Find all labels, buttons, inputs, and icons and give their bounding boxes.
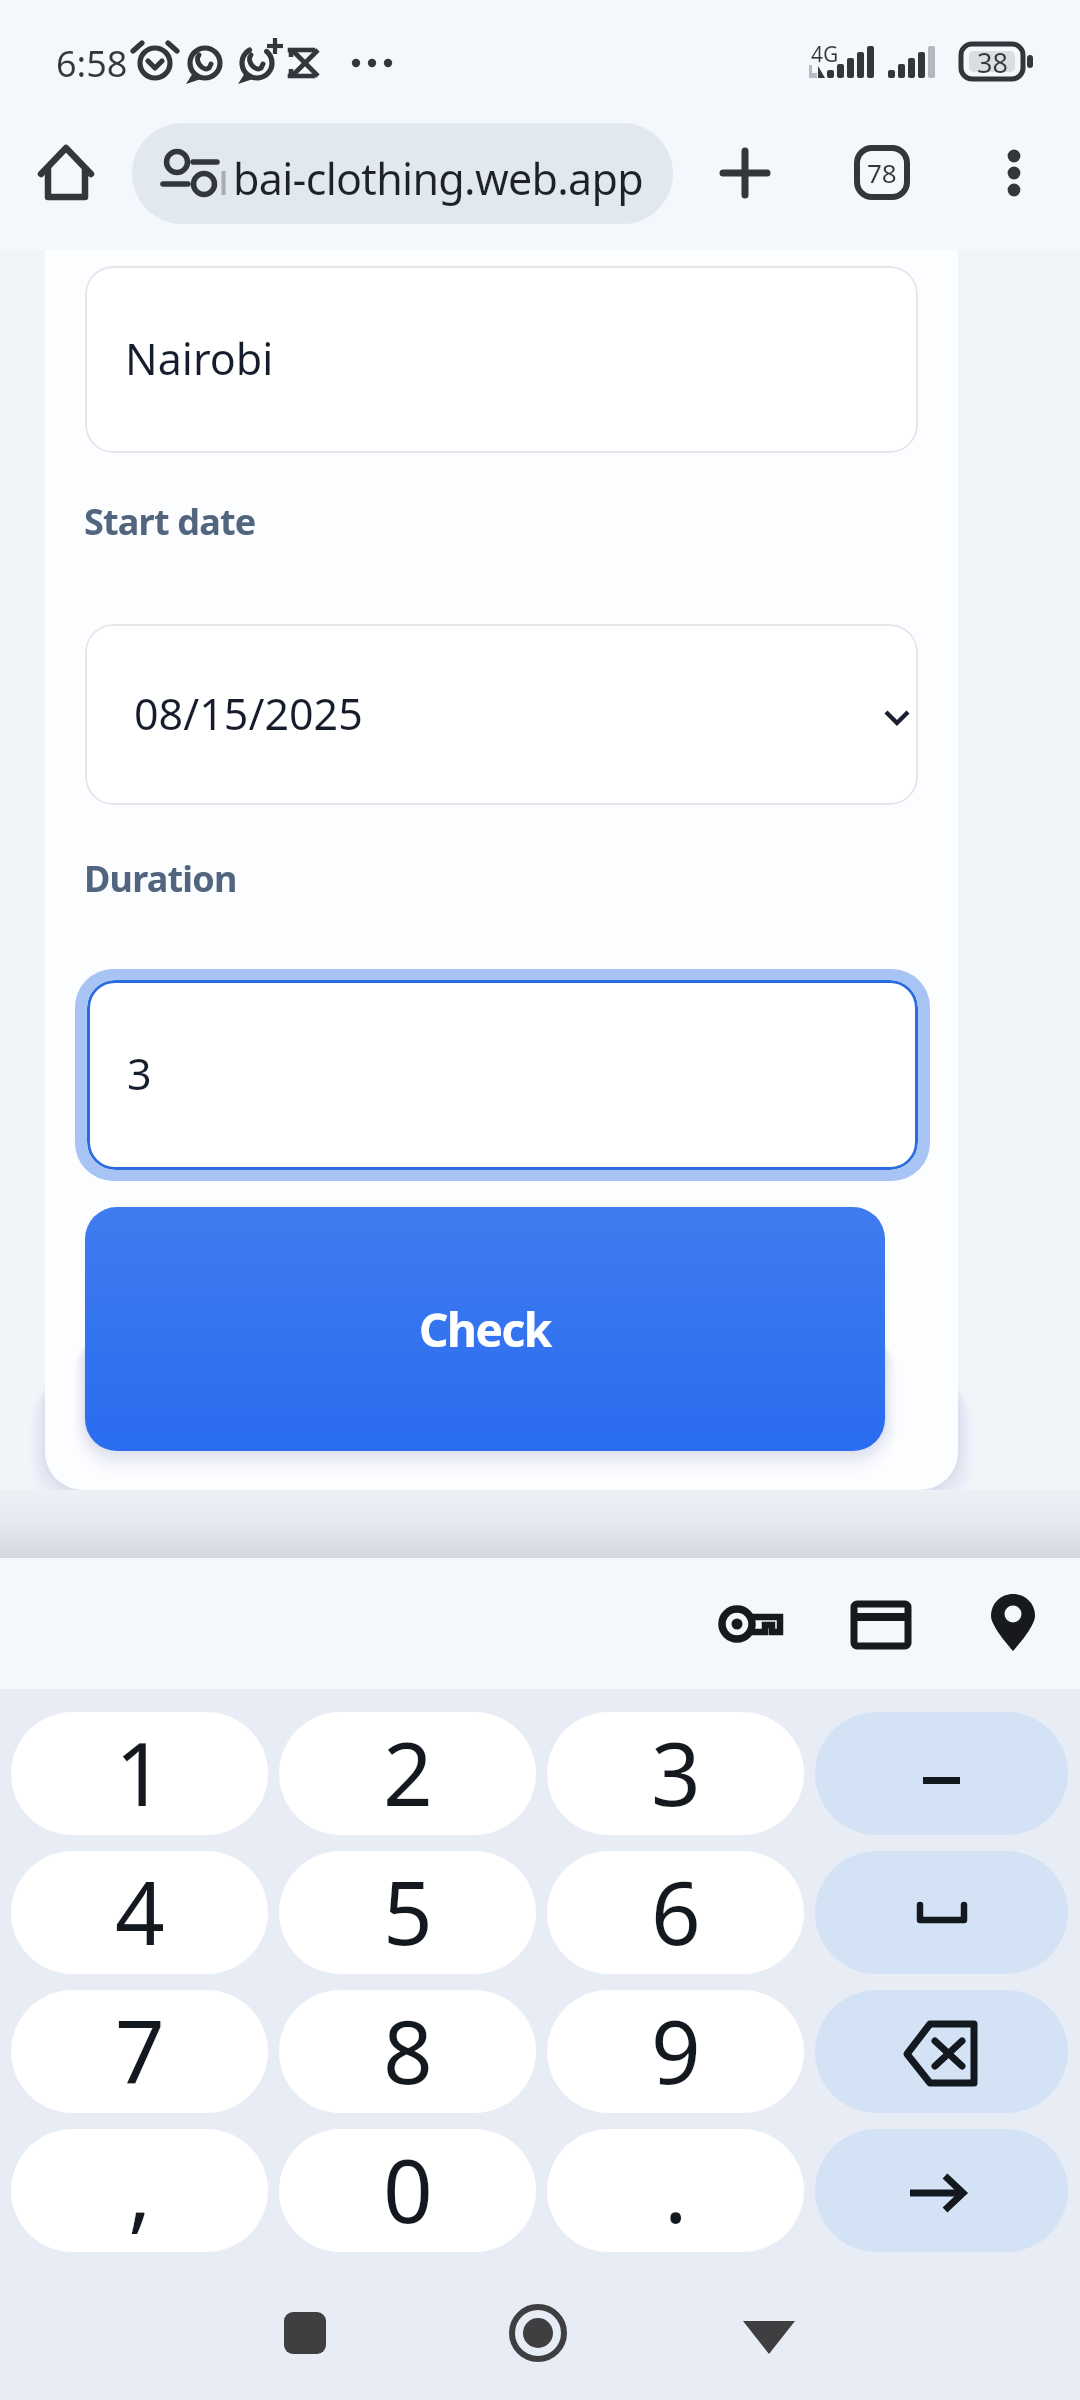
staticText: 3 bbox=[127, 1044, 152, 1103]
staticText: 2 bbox=[383, 1713, 433, 1831]
button[interactable]: Check bbox=[85, 1207, 885, 1451]
button[interactable]: Payment methods bbox=[836, 1579, 926, 1669]
staticText: 78 bbox=[867, 155, 897, 190]
button[interactable]: Passwords bbox=[702, 1579, 792, 1669]
button[interactable]: 08/15/2025 bbox=[85, 624, 918, 805]
staticText: 3 bbox=[651, 1713, 701, 1831]
staticText: . bbox=[664, 2130, 688, 2248]
button[interactable]: More options bbox=[971, 130, 1057, 216]
button[interactable]: 3 bbox=[75, 969, 930, 1181]
button[interactable]: Backspace bbox=[815, 1990, 1068, 2113]
button[interactable]: 9 bbox=[547, 1990, 804, 2113]
staticText: 9 bbox=[651, 1991, 701, 2109]
button[interactable]: 6 bbox=[547, 1851, 804, 1974]
staticText: 8 bbox=[383, 1991, 433, 2109]
button[interactable]: 1 bbox=[11, 1712, 268, 1835]
button[interactable]: Tabs bbox=[839, 130, 925, 216]
staticText: Nairobi bbox=[125, 329, 274, 388]
button[interactable]: 0 bbox=[279, 2129, 536, 2252]
staticText: 6 bbox=[651, 1852, 701, 1970]
staticText: , bbox=[128, 2130, 152, 2248]
button[interactable]: New tab bbox=[702, 130, 788, 216]
staticText: 7 bbox=[115, 1991, 165, 2109]
staticText: 0 bbox=[383, 2130, 433, 2248]
button[interactable]: Space bbox=[815, 1851, 1068, 1974]
staticText: bai-clothing.web.app bbox=[233, 149, 644, 208]
staticText: 5 bbox=[383, 1852, 433, 1970]
staticText: 4G bbox=[811, 40, 839, 69]
button[interactable]: 3 bbox=[547, 1712, 804, 1835]
staticText: 4 bbox=[115, 1852, 165, 1970]
button[interactable]: Enter bbox=[815, 2129, 1068, 2252]
button[interactable]: Back bbox=[739, 2303, 799, 2363]
staticText: 6:58 bbox=[56, 39, 128, 88]
button[interactable]: Minus bbox=[815, 1712, 1068, 1835]
button[interactable]: ı bbox=[132, 123, 673, 224]
staticText: 1 bbox=[115, 1713, 165, 1831]
button[interactable]: Home bbox=[16, 122, 116, 222]
staticText: 08/15/2025 bbox=[134, 684, 363, 743]
button[interactable]: Home bbox=[508, 2303, 568, 2363]
staticText: Start date bbox=[84, 497, 256, 546]
button[interactable]: 7 bbox=[11, 1990, 268, 2113]
button[interactable]: Addresses bbox=[968, 1579, 1058, 1669]
button[interactable]: 2 bbox=[279, 1712, 536, 1835]
staticText: 38 bbox=[977, 44, 1008, 79]
staticText: Check bbox=[419, 1298, 551, 1361]
button[interactable]: 5 bbox=[279, 1851, 536, 1974]
button[interactable]: Nairobi bbox=[85, 266, 918, 453]
button[interactable]: Recent apps bbox=[275, 2303, 335, 2363]
staticText: Duration bbox=[84, 854, 237, 903]
button[interactable]: . bbox=[547, 2129, 804, 2252]
button[interactable]: 4 bbox=[11, 1851, 268, 1974]
button[interactable]: 8 bbox=[279, 1990, 536, 2113]
button[interactable]: , bbox=[11, 2129, 268, 2252]
staticText: ı bbox=[218, 149, 230, 208]
